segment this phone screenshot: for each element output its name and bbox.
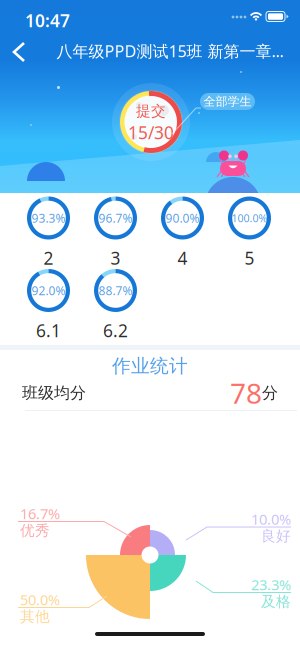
staticText: 23.3% bbox=[251, 575, 291, 594]
staticText: 八年级PPD测试15班 新第一章... bbox=[56, 40, 283, 62]
staticText: 90.0% bbox=[165, 210, 199, 226]
staticText: 6.1 bbox=[36, 319, 61, 342]
staticText: 4 bbox=[177, 246, 187, 269]
staticText: 良好 bbox=[261, 527, 291, 545]
staticText: 78 bbox=[230, 374, 262, 412]
staticText: 96.7% bbox=[98, 210, 132, 226]
staticText: 92.0% bbox=[31, 282, 65, 298]
staticText: 3 bbox=[110, 246, 120, 269]
staticText: 优秀 bbox=[20, 521, 50, 539]
staticText: 全部学生 bbox=[203, 94, 251, 109]
staticText: 10:47 bbox=[25, 9, 70, 32]
staticText: 5 bbox=[244, 246, 254, 269]
staticText: 93.3% bbox=[31, 210, 65, 226]
staticText: 及格 bbox=[261, 592, 291, 610]
staticText: 16.7% bbox=[20, 504, 60, 523]
staticText: 100.0% bbox=[231, 211, 267, 225]
staticText: 88.7% bbox=[98, 282, 132, 298]
button[interactable]: Back bbox=[0, 30, 40, 72]
staticText: 10.0% bbox=[251, 509, 291, 529]
staticText: 提交 bbox=[136, 102, 166, 120]
staticText: 班级均分 bbox=[22, 383, 86, 403]
staticText: 15/30 bbox=[128, 121, 174, 144]
staticText: 其他 bbox=[20, 607, 50, 625]
staticText: 6.2 bbox=[103, 319, 128, 342]
button[interactable]: 全部学生 bbox=[200, 93, 255, 110]
staticText: 作业统计 bbox=[112, 354, 188, 377]
staticText: 50.0% bbox=[20, 590, 60, 609]
staticText: 分 bbox=[262, 383, 278, 403]
staticText: 2 bbox=[43, 246, 53, 269]
